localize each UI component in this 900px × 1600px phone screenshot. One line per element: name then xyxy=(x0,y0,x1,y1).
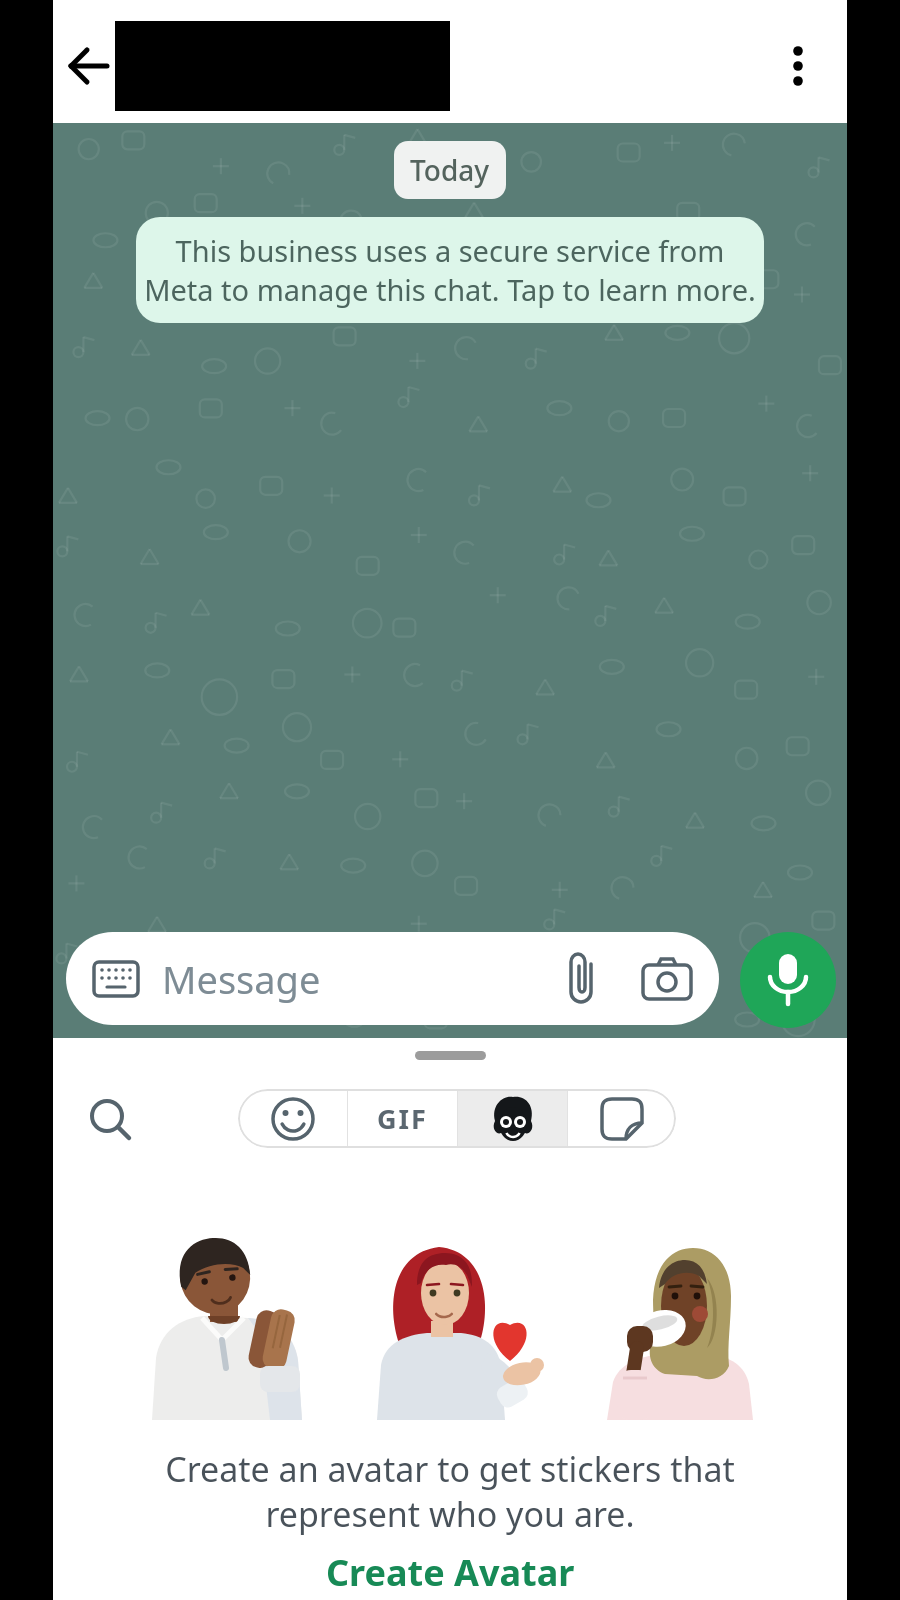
button[interactable] xyxy=(641,949,693,1009)
staticText: GIF xyxy=(377,1100,428,1137)
button[interactable]: Message xyxy=(66,932,719,1025)
staticText: Create Avatar xyxy=(326,1548,575,1597)
staticText: Today xyxy=(410,151,490,189)
button[interactable] xyxy=(458,1089,567,1148)
button[interactable]: This business uses a secure service from… xyxy=(136,217,764,323)
button[interactable] xyxy=(568,1089,676,1148)
staticText: This business uses a secure service from… xyxy=(144,231,756,309)
button[interactable]: Create Avatar xyxy=(310,1546,590,1598)
button[interactable] xyxy=(776,38,820,94)
button[interactable]: GIF xyxy=(348,1089,457,1148)
button[interactable] xyxy=(81,1090,141,1150)
button[interactable] xyxy=(559,949,603,1009)
staticText: Message xyxy=(162,953,321,1005)
button[interactable] xyxy=(63,40,115,92)
staticText: Create an avatar to get stickers that re… xyxy=(165,1446,735,1536)
button[interactable] xyxy=(238,1089,347,1148)
button[interactable] xyxy=(740,932,836,1028)
